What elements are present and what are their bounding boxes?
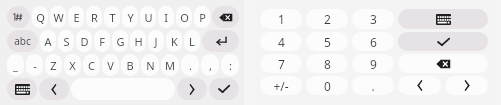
staticText: E bbox=[73, 10, 80, 25]
button[interactable]: E bbox=[68, 6, 84, 28]
staticText: O bbox=[180, 10, 189, 25]
staticText: C bbox=[88, 58, 95, 73]
button[interactable]: _ bbox=[7, 54, 24, 76]
button[interactable]: Q bbox=[32, 6, 48, 28]
staticText: 5 bbox=[324, 34, 331, 50]
staticText: , bbox=[209, 58, 212, 73]
button[interactable]: G bbox=[112, 30, 128, 52]
button[interactable]: Switch keyboard bbox=[398, 9, 488, 29]
staticText: V bbox=[107, 58, 114, 73]
staticText: N bbox=[146, 58, 155, 73]
button[interactable]: , bbox=[201, 54, 219, 76]
button[interactable]: Enter bbox=[202, 30, 239, 52]
staticText: R bbox=[91, 10, 98, 25]
button[interactable]: N bbox=[141, 54, 159, 76]
button[interactable]: A bbox=[40, 30, 56, 52]
button[interactable]: 7 bbox=[260, 54, 302, 73]
staticText: U bbox=[144, 10, 153, 25]
button[interactable]: K bbox=[166, 30, 182, 52]
staticText: 4 bbox=[278, 34, 285, 50]
button[interactable]: Next bbox=[445, 76, 488, 95]
staticText: J bbox=[154, 34, 158, 49]
button[interactable]: +/- bbox=[260, 76, 302, 95]
button[interactable]: T bbox=[104, 6, 120, 28]
button[interactable]: 3 bbox=[352, 9, 394, 29]
staticText: . bbox=[371, 78, 375, 94]
button[interactable]: 5 bbox=[306, 32, 348, 51]
staticText: S bbox=[63, 34, 70, 49]
staticText: F bbox=[99, 34, 105, 49]
button[interactable]: . bbox=[352, 76, 394, 95]
button[interactable]: X bbox=[64, 54, 81, 76]
button[interactable]: O bbox=[176, 6, 192, 28]
button[interactable]: 6 bbox=[352, 32, 394, 51]
button[interactable]: P bbox=[194, 6, 210, 28]
button[interactable]: V bbox=[102, 54, 119, 76]
staticText: D bbox=[80, 34, 89, 49]
staticText: Y bbox=[127, 10, 134, 25]
staticText: I bbox=[164, 10, 168, 25]
staticText: 8 bbox=[324, 56, 331, 72]
staticText: L bbox=[189, 34, 195, 49]
staticText: 6 bbox=[370, 34, 377, 50]
button[interactable]: B bbox=[121, 54, 139, 76]
button[interactable]: 4 bbox=[260, 32, 302, 51]
button[interactable]: Next bbox=[177, 78, 207, 100]
button[interactable]: - bbox=[26, 54, 43, 76]
button[interactable]: U bbox=[140, 6, 156, 28]
button[interactable]: Switch keyboard bbox=[7, 78, 37, 100]
staticText: A bbox=[44, 34, 52, 49]
button[interactable]: Symbols bbox=[7, 6, 30, 28]
button[interactable]: Previous bbox=[39, 78, 69, 100]
staticText: B bbox=[126, 58, 134, 73]
staticText: 7 bbox=[278, 56, 285, 72]
staticText: 3 bbox=[370, 11, 377, 27]
button[interactable]: 0 bbox=[306, 76, 348, 95]
button[interactable]: 8 bbox=[306, 54, 348, 73]
button[interactable]: C bbox=[83, 54, 100, 76]
staticText: . bbox=[189, 58, 192, 73]
button[interactable]: I bbox=[158, 6, 174, 28]
button[interactable]: J bbox=[148, 30, 164, 52]
staticText: K bbox=[171, 34, 178, 49]
button[interactable]: abc bbox=[7, 30, 38, 52]
staticText: abc bbox=[14, 34, 31, 48]
staticText: W bbox=[53, 10, 64, 25]
staticText: P bbox=[199, 10, 206, 25]
button[interactable]: . bbox=[181, 54, 199, 76]
button[interactable]: M bbox=[161, 54, 179, 76]
button[interactable]: H bbox=[130, 30, 146, 52]
button[interactable]: W bbox=[50, 6, 66, 28]
staticText: _ bbox=[13, 58, 18, 73]
staticText: +/- bbox=[273, 78, 289, 94]
button[interactable]: 2 bbox=[306, 9, 348, 29]
staticText: Q bbox=[36, 10, 45, 25]
button[interactable]: Done bbox=[209, 78, 239, 100]
staticText: T bbox=[109, 10, 116, 25]
staticText: G bbox=[116, 34, 125, 49]
button[interactable]: 1 bbox=[260, 9, 302, 29]
button[interactable]: R bbox=[86, 6, 102, 28]
button[interactable]: Backspace bbox=[398, 54, 488, 73]
button[interactable]: Backspace bbox=[212, 6, 239, 28]
staticText: - bbox=[33, 58, 37, 73]
button[interactable]: D bbox=[76, 30, 92, 52]
button[interactable]: Done bbox=[398, 32, 488, 51]
button[interactable]: Z bbox=[45, 54, 62, 76]
staticText: X bbox=[69, 58, 76, 73]
staticText: 0 bbox=[324, 78, 331, 94]
button[interactable]: S bbox=[58, 30, 74, 52]
staticText: H bbox=[134, 34, 143, 49]
staticText: 2 bbox=[324, 11, 331, 27]
staticText: 9 bbox=[370, 56, 377, 72]
staticText: : bbox=[229, 58, 232, 73]
button[interactable]: F bbox=[94, 30, 110, 52]
button[interactable]: : bbox=[221, 54, 239, 76]
staticText: M bbox=[165, 58, 175, 73]
button[interactable]: L bbox=[184, 30, 200, 52]
button[interactable]: 9 bbox=[352, 54, 394, 73]
button[interactable]: Previous bbox=[398, 76, 441, 95]
button[interactable]: Y bbox=[122, 6, 138, 28]
staticText: Z bbox=[50, 58, 57, 73]
